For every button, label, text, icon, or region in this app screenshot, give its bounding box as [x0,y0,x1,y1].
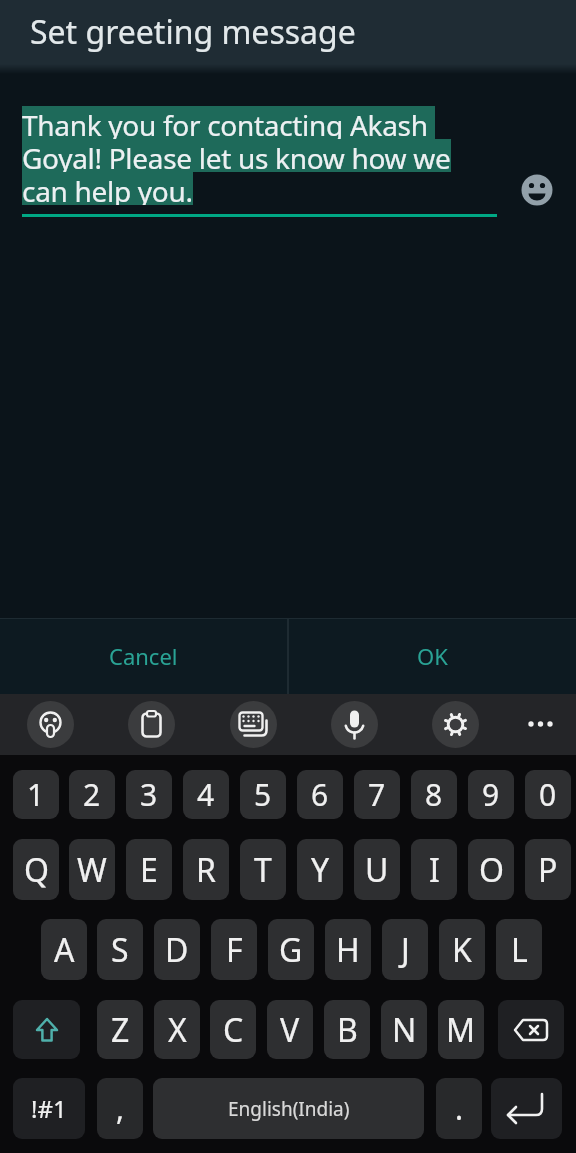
staticText: 2 [83,774,101,815]
button[interactable]: , [97,1078,143,1139]
button[interactable]: V [267,1000,313,1059]
button[interactable]: P [525,839,571,900]
button[interactable]: F [211,919,257,980]
staticText: Cancel [109,641,178,671]
button[interactable]: !#1 [13,1078,85,1139]
staticText: H [336,928,360,972]
staticText: 8 [425,774,443,815]
button[interactable]: 7 [354,770,400,819]
button[interactable]: Cancel [0,618,287,694]
button[interactable]: E [126,839,172,900]
staticText: A [54,928,75,972]
staticText: E [140,848,158,892]
staticText: 3 [140,774,158,815]
staticText: C [223,1008,244,1052]
button[interactable] [518,701,564,747]
staticText: L [511,928,528,972]
button[interactable]: T [240,839,286,900]
staticText: Thank you for contacting Akash [22,106,435,139]
button[interactable]: 0 [525,770,571,819]
button[interactable]: Thank you for contacting Akash [22,106,451,205]
staticText: English(India) [228,1096,350,1122]
button[interactable] [230,701,277,748]
button[interactable] [432,701,479,748]
button[interactable]: X [154,1000,200,1059]
button[interactable]: I [411,839,457,900]
staticText: P [538,848,558,892]
staticText: 4 [197,774,215,815]
staticText: X [168,1008,187,1052]
staticText: 5 [254,774,272,815]
button[interactable]: Z [97,1000,143,1059]
staticText: 0 [539,774,557,815]
button[interactable]: 4 [183,770,229,819]
button[interactable]: . [436,1078,482,1139]
staticText: W [77,848,107,892]
staticText: G [279,928,303,972]
staticText: Z [111,1008,130,1052]
staticText: K [452,928,472,972]
button[interactable]: 8 [411,770,457,819]
staticText: 1 [27,774,45,815]
staticText: V [280,1008,300,1052]
staticText: I [429,848,440,892]
button[interactable]: M [438,1000,484,1059]
button[interactable]: H [325,919,371,980]
button[interactable]: 9 [468,770,514,819]
button[interactable]: 3 [126,770,172,819]
button[interactable]: K [439,919,485,980]
staticText: can help you. [22,172,193,205]
staticText: Set greeting message [30,10,356,54]
button[interactable] [498,1000,564,1059]
button[interactable]: 6 [297,770,343,819]
button[interactable]: S [97,919,143,980]
button[interactable]: Q [13,839,59,900]
staticText: , [116,1088,125,1129]
staticText: Goyal! Please let us know how we [22,139,451,172]
staticText: 6 [311,774,329,815]
button[interactable]: O [468,839,514,900]
button[interactable]: 2 [69,770,115,819]
button[interactable]: OK [289,618,576,694]
button[interactable] [13,1000,80,1059]
button[interactable] [491,1078,562,1139]
staticText: 9 [482,774,500,815]
staticText: O [479,848,504,892]
button[interactable]: 5 [240,770,286,819]
button[interactable]: 1 [13,770,59,819]
button[interactable]: C [210,1000,256,1059]
staticText: U [365,848,389,892]
button[interactable]: B [324,1000,370,1059]
button[interactable]: A [41,919,87,980]
staticText: F [226,928,243,972]
button[interactable]: L [496,919,542,980]
staticText: OK [417,641,448,671]
staticText: D [165,928,189,972]
button[interactable]: J [382,919,428,980]
staticText: M [446,1008,476,1052]
staticText: Q [24,848,49,892]
staticText: Y [311,848,330,892]
staticText: N [392,1008,417,1052]
button[interactable]: G [268,919,314,980]
button[interactable] [331,701,378,748]
staticText: J [401,928,410,972]
button[interactable]: Y [297,839,343,900]
button[interactable]: U [354,839,400,900]
staticText: R [196,848,216,892]
button[interactable] [27,701,74,748]
button[interactable]: D [154,919,200,980]
staticText: B [337,1008,358,1052]
button[interactable]: W [69,839,115,900]
staticText: . [455,1088,464,1129]
button[interactable] [128,701,175,748]
staticText: 7 [368,774,386,815]
staticText: !#1 [31,1092,67,1125]
staticText: S [111,928,129,972]
button[interactable]: R [183,839,229,900]
staticText: T [254,848,272,892]
button[interactable]: N [381,1000,427,1059]
button[interactable] [521,174,553,206]
button[interactable]: English(India) [153,1078,424,1139]
